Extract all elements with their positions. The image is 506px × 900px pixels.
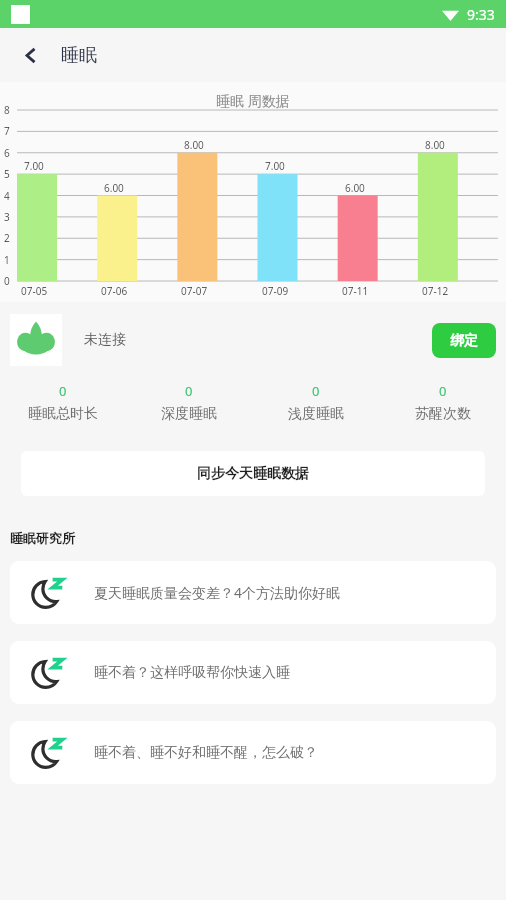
staticText: 5 <box>4 167 10 181</box>
staticText: 睡眠 周数据 <box>216 91 290 110</box>
staticText: 夏天睡眠质量会变差？4个方法助你好眠 <box>94 583 341 602</box>
staticText: 6 <box>4 146 10 160</box>
staticText: 07-07 <box>181 284 208 298</box>
staticText: 0 <box>185 382 193 400</box>
button[interactable]: 绑定 <box>432 323 496 358</box>
staticText: 睡眠 <box>61 44 97 67</box>
button[interactable]: Back <box>14 38 48 72</box>
staticText: 7.00 <box>24 159 44 173</box>
staticText: 0 <box>4 274 10 288</box>
staticText: 07-05 <box>21 284 48 298</box>
staticText: 深度睡眠 <box>161 405 217 423</box>
staticText: 0 <box>439 382 447 400</box>
staticText: 睡眠总时长 <box>28 405 98 423</box>
staticText: 睡不着、睡不好和睡不醒，怎么破？ <box>94 744 318 762</box>
button[interactable]: 睡不着、睡不好和睡不醒，怎么破？ <box>10 721 496 784</box>
staticText: 睡眠研究所 <box>10 530 75 546</box>
staticText: 7.00 <box>265 159 285 173</box>
staticText: 7 <box>4 124 10 138</box>
staticText: 9:33 <box>467 5 495 24</box>
staticText: 07-06 <box>101 284 128 298</box>
button[interactable]: 同步今天睡眠数据 <box>21 451 485 496</box>
staticText: 8 <box>4 103 10 117</box>
staticText: 07-12 <box>422 284 449 298</box>
staticText: 0 <box>59 382 67 400</box>
staticText: 未连接 <box>84 331 126 349</box>
staticText: 0 <box>312 382 320 400</box>
staticText: 07-09 <box>262 284 289 298</box>
button[interactable]: 夏天睡眠质量会变差？4个方法助你好眠 <box>10 561 496 624</box>
staticText: 2 <box>4 231 10 245</box>
staticText: 浅度睡眠 <box>288 405 344 423</box>
staticText: 3 <box>4 210 10 224</box>
staticText: 睡不着？这样呼吸帮你快速入睡 <box>94 664 290 682</box>
staticText: 1 <box>4 253 10 267</box>
staticText: 8.00 <box>425 138 445 152</box>
staticText: 6.00 <box>345 181 365 195</box>
staticText: 6.00 <box>104 181 124 195</box>
staticText: 8.00 <box>184 138 204 152</box>
button[interactable]: 睡不着？这样呼吸帮你快速入睡 <box>10 641 496 704</box>
staticText: 07-11 <box>342 284 369 298</box>
staticText: 绑定 <box>450 332 478 350</box>
staticText: 4 <box>4 189 10 203</box>
staticText: 同步今天睡眠数据 <box>197 465 309 483</box>
staticText: 苏醒次数 <box>415 405 471 423</box>
